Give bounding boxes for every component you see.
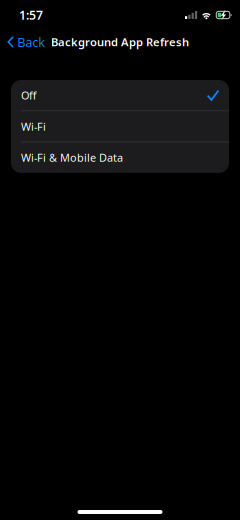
button[interactable]: Wi-Fi & Mobile Data	[11, 142, 229, 173]
staticText: 1:57	[19, 7, 43, 23]
button[interactable]: Back	[0, 30, 51, 54]
staticText: Wi-Fi & Mobile Data	[21, 150, 123, 165]
button[interactable]: Wi-Fi	[11, 111, 229, 142]
staticText: Background App Refresh	[51, 34, 189, 50]
staticText: Off	[21, 88, 36, 103]
staticText: Back	[17, 33, 45, 51]
staticText: Wi-Fi	[21, 119, 46, 134]
button[interactable]: Off	[11, 80, 229, 110]
